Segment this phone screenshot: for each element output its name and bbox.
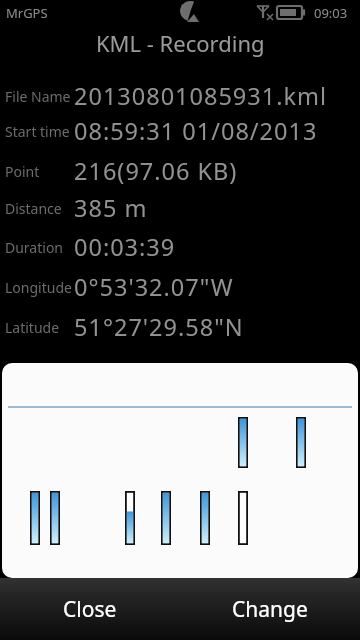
- staticText: 09:03: [314, 4, 348, 22]
- staticText: 385 m: [74, 192, 148, 224]
- staticText: 0°53'32.07"W: [74, 271, 234, 303]
- button[interactable]: Close: [0, 578, 180, 640]
- staticText: Duration: [5, 238, 64, 257]
- staticText: Change: [232, 595, 308, 624]
- staticText: MrGPS: [6, 4, 48, 22]
- button[interactable]: Change: [180, 578, 360, 640]
- staticText: Latitude: [5, 318, 60, 337]
- staticText: KML - Recording: [96, 28, 265, 58]
- staticText: 51°27'29.58"N: [74, 311, 244, 343]
- staticText: File Name: [5, 87, 71, 106]
- staticText: Start time: [5, 122, 70, 141]
- staticText: 20130801085931.kml: [74, 80, 328, 112]
- staticText: Distance: [5, 199, 62, 218]
- staticText: 00:03:39: [74, 231, 176, 263]
- staticText: 08:59:31 01/08/2013: [74, 115, 318, 147]
- staticText: 216(97.06 KB): [74, 155, 238, 187]
- staticText: Longitude: [5, 278, 72, 297]
- staticText: Point: [5, 162, 40, 181]
- staticText: Close: [63, 595, 117, 624]
